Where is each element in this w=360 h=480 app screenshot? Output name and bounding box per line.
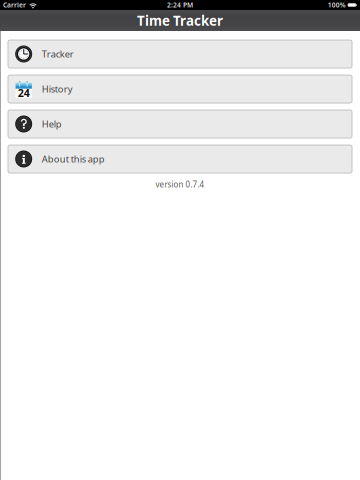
button[interactable]: Help xyxy=(8,110,352,138)
staticText: Carrier xyxy=(3,1,26,9)
staticText: Time Tracker xyxy=(137,12,223,29)
staticText: Tracker xyxy=(42,48,74,60)
staticText: 24 xyxy=(18,86,30,100)
staticText: 2:24 PM xyxy=(167,1,193,9)
button[interactable]: 24 xyxy=(8,75,352,103)
staticText: 100% xyxy=(328,1,346,9)
button[interactable]: Tracker xyxy=(8,40,352,68)
staticText: version 0.7.4 xyxy=(155,179,204,190)
staticText: About this app xyxy=(42,153,105,165)
staticText: History xyxy=(42,83,73,95)
button[interactable]: About this app xyxy=(8,145,352,173)
staticText: Help xyxy=(42,118,62,130)
